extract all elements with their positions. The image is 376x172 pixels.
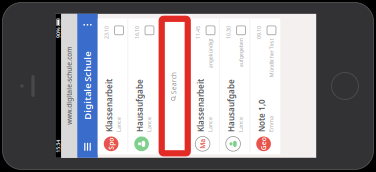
button[interactable]: Hausaufgabe	[117, 28, 253, 58]
staticText: 10.30	[233, 125, 246, 132]
staticText: Klassenarbeit	[140, 95, 193, 106]
staticText: Hausaufgabe	[140, 126, 193, 137]
button[interactable]: Ma	[117, 89, 253, 119]
staticText: 11.45	[233, 94, 246, 102]
staticText: angekündigt	[203, 107, 233, 114]
staticText: 09.10	[233, 155, 246, 163]
button[interactable]: Spo	[117, 0, 253, 28]
staticText: Lance	[140, 137, 155, 144]
button[interactable]: Geo	[117, 150, 253, 172]
staticText: 16.10	[233, 33, 246, 41]
staticText: Search	[177, 69, 199, 78]
staticText: Emma	[140, 168, 156, 172]
staticText: Hausaufgabe	[140, 34, 193, 45]
button[interactable]: Search	[126, 68, 244, 80]
button[interactable]: Hausaufgabe	[117, 120, 253, 150]
staticText: Klassenarbeit	[140, 4, 193, 15]
staticText: Spo	[122, 7, 134, 16]
staticText: aufgegeben	[204, 137, 233, 145]
staticText: Note 1,0	[140, 156, 173, 167]
staticText: Mündlicher Test	[194, 168, 233, 172]
staticText: Lance	[140, 15, 155, 22]
staticText: Lance	[140, 107, 155, 114]
